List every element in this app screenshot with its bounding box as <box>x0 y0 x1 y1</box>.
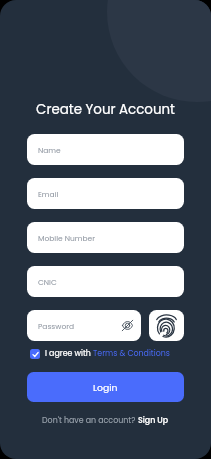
staticText: CNIC <box>38 277 57 287</box>
button[interactable]: CNIC <box>27 266 184 297</box>
staticText: Login <box>93 381 118 394</box>
staticText: Don't have an account? <box>42 415 138 426</box>
button[interactable]: Email <box>27 178 184 209</box>
button[interactable]: Name <box>27 134 184 165</box>
staticText: Create Your Account <box>0 100 211 119</box>
staticText: Sign Up <box>138 415 169 426</box>
button[interactable]: Login <box>27 372 184 402</box>
button[interactable]: Fingerprint login <box>149 310 184 341</box>
button[interactable]: Sign Up <box>138 415 169 426</box>
staticText: I agree with Terms & Conditions <box>45 348 170 359</box>
button[interactable]: Mobile Number <box>27 222 184 253</box>
staticText: Name <box>38 145 61 155</box>
staticText: Mobile Number <box>38 233 95 243</box>
button[interactable]: Toggle password visibility <box>122 320 133 331</box>
staticText: Password <box>38 321 122 331</box>
staticText: Email <box>38 189 59 199</box>
button[interactable]: Password <box>27 310 141 341</box>
button[interactable]: I agree with Terms & Conditions <box>30 348 170 359</box>
